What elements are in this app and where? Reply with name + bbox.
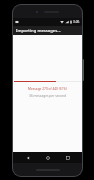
button[interactable]: Recent apps [62,152,73,163]
button[interactable]: Back [22,152,33,163]
button[interactable]: Importing messages... [16,26,79,35]
staticText: 36 messages per second [13,94,82,98]
staticText: Importing messages... [16,28,61,34]
button[interactable]: Home [42,152,53,163]
staticText: Message 270 of 440 (61%) [13,87,82,91]
staticText: 3:26 [73,20,80,24]
